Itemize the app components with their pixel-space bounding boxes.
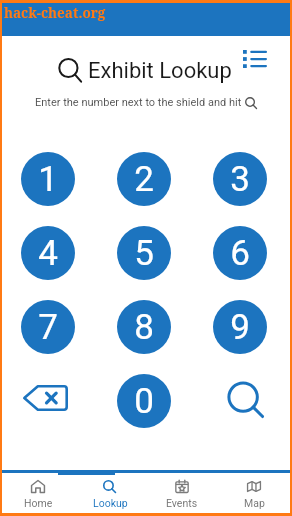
button[interactable]: Search	[192, 374, 288, 428]
button[interactable]: Map	[218, 475, 290, 513]
button[interactable]: Lookup	[74, 475, 146, 513]
staticText: 7	[38, 307, 58, 348]
staticText: 9	[230, 307, 250, 348]
button[interactable]: 2	[117, 152, 171, 206]
staticText: Lookup	[93, 497, 128, 509]
button[interactable]: 4	[21, 226, 75, 280]
button[interactable]: 0	[117, 374, 171, 428]
button[interactable]: 1	[21, 152, 75, 206]
button[interactable]: 6	[213, 226, 267, 280]
staticText: Enter the number next to the shield and …	[35, 96, 242, 109]
staticText: 2	[134, 159, 154, 200]
staticText: 5	[134, 233, 154, 274]
button[interactable]: Backspace	[0, 374, 96, 428]
staticText: Exhibit Lookup	[88, 58, 232, 84]
staticText: 4	[38, 233, 58, 274]
button[interactable]: 7	[21, 300, 75, 354]
staticText: 8	[134, 307, 154, 348]
staticText: 6	[230, 233, 250, 274]
staticText: Home	[24, 497, 53, 509]
button[interactable]: 8	[117, 300, 171, 354]
staticText: 0	[134, 381, 154, 422]
staticText: Map	[244, 497, 265, 509]
button[interactable]: 3	[213, 152, 267, 206]
staticText: 3	[230, 159, 250, 200]
button[interactable]: List view	[237, 41, 273, 77]
staticText: 1	[38, 159, 58, 200]
button[interactable]: 5	[117, 226, 171, 280]
button[interactable]: Events	[146, 475, 218, 513]
button[interactable]: Home	[2, 475, 74, 513]
staticText: Events	[166, 497, 198, 509]
staticText: hack-cheat.org	[4, 4, 106, 22]
button[interactable]: 9	[213, 300, 267, 354]
